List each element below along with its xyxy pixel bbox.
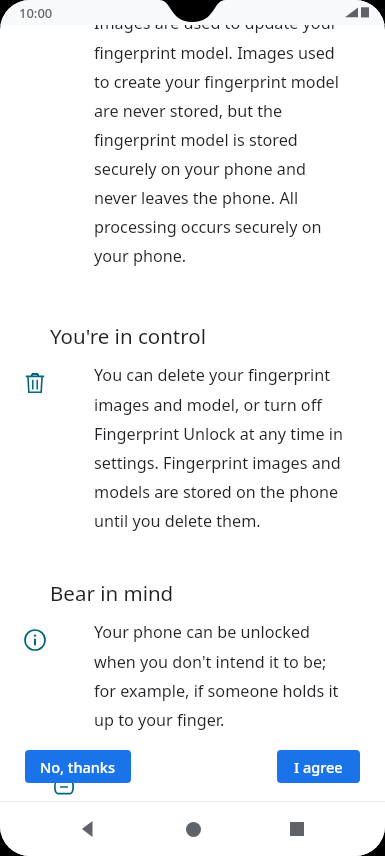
staticText: I agree	[294, 757, 343, 777]
staticText: Images are used to update your fingerpri…	[94, 12, 343, 266]
staticText: You can delete your fingerprint images a…	[94, 364, 345, 531]
button[interactable]: Back	[64, 805, 112, 853]
button[interactable]: Home	[169, 805, 217, 853]
button[interactable]: No, thanks	[25, 750, 131, 783]
staticText: Your phone can be unlocked when you don'…	[94, 621, 345, 730]
button[interactable]: Recent apps	[273, 805, 321, 853]
staticText: Bear in mind	[50, 579, 174, 607]
button[interactable]: Learn more link	[50, 773, 78, 801]
staticText: 10:00	[19, 4, 53, 22]
staticText: No, thanks	[40, 757, 116, 777]
button[interactable]: I agree	[277, 750, 360, 783]
staticText: You're in control	[50, 322, 206, 350]
